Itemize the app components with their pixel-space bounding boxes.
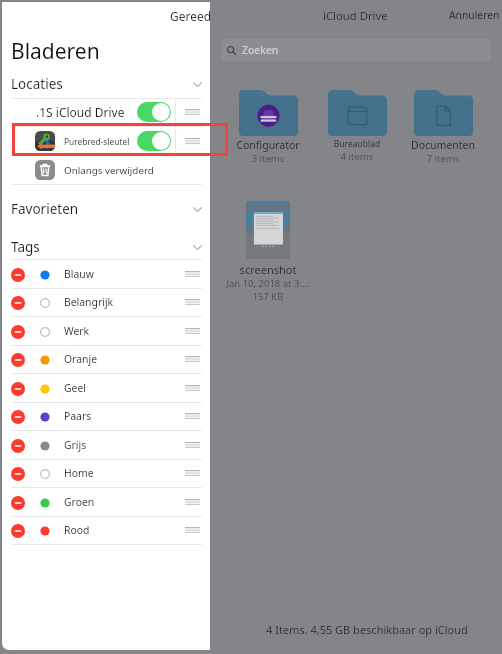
button[interactable]: iCloud Drive bbox=[323, 8, 388, 23]
other: Remove Geel bbox=[11, 382, 25, 396]
button[interactable]: Onlangs verwijderd bbox=[2, 156, 210, 184]
staticText: Tags bbox=[11, 238, 40, 256]
other: Collapse Favorieten bbox=[193, 207, 202, 212]
other: Remove Werk bbox=[11, 325, 25, 339]
staticText: Belangrijk bbox=[64, 295, 114, 309]
other: Reorder bbox=[185, 470, 200, 476]
other: Remove Grijs bbox=[11, 439, 25, 453]
button[interactable]: Locaties bbox=[2, 70, 210, 98]
button[interactable]: Remove Rood bbox=[2, 516, 210, 544]
staticText: Configurator bbox=[224, 138, 312, 152]
staticText: Zoeken bbox=[242, 43, 279, 57]
other: Reorder bbox=[185, 271, 200, 277]
button[interactable]: Remove Groen bbox=[2, 488, 210, 516]
staticText: 157 KB bbox=[224, 290, 312, 303]
other: Reorder bbox=[185, 138, 200, 144]
button[interactable]: Remove Oranje bbox=[2, 345, 210, 373]
button[interactable]: Remove Werk bbox=[2, 317, 210, 345]
button[interactable]: Bureaublad bbox=[313, 90, 401, 163]
button[interactable]: Toggle .1S iCloud Drive bbox=[137, 102, 171, 122]
other: Reorder bbox=[185, 385, 200, 391]
staticText: Rood bbox=[64, 523, 90, 537]
button[interactable]: Tags bbox=[2, 232, 210, 262]
staticText: Onlangs verwijderd bbox=[64, 164, 154, 177]
staticText: Locaties bbox=[11, 75, 63, 93]
other: Remove Belangrijk bbox=[11, 296, 25, 310]
button[interactable]: Remove Paars bbox=[2, 402, 210, 430]
button[interactable]: Remove Home bbox=[2, 459, 210, 487]
staticText: Home bbox=[64, 466, 94, 480]
staticText: Grijs bbox=[64, 438, 87, 452]
other: Collapse Locaties bbox=[193, 82, 202, 87]
staticText: Annuleren bbox=[449, 8, 500, 22]
button[interactable]: Remove Geel bbox=[2, 374, 210, 402]
button[interactable]: Configurator bbox=[224, 90, 312, 165]
staticText: Werk bbox=[64, 324, 90, 338]
other: Remove Oranje bbox=[11, 353, 25, 367]
staticText: Bladeren bbox=[11, 37, 100, 66]
staticText: screenshot bbox=[224, 262, 312, 277]
staticText: 3 items bbox=[224, 152, 312, 165]
other: Reorder bbox=[185, 299, 200, 305]
staticText: Purebred-sleutel bbox=[64, 136, 130, 147]
other: Reorder bbox=[185, 328, 200, 334]
other: Remove Blauw bbox=[11, 268, 25, 282]
other: Remove Rood bbox=[11, 524, 25, 538]
button[interactable]: Toggle Purebred-sleutel bbox=[137, 131, 171, 151]
staticText: Oranje bbox=[64, 352, 97, 366]
staticText: .1S iCloud Drive bbox=[36, 104, 125, 120]
other: Reorder bbox=[185, 109, 200, 115]
button[interactable]: Remove Belangrijk bbox=[2, 288, 210, 316]
staticText: Jan 10, 2018 at 3:... bbox=[224, 277, 312, 290]
staticText: Bureaublad bbox=[313, 138, 401, 150]
button[interactable]: Remove Blauw bbox=[2, 260, 210, 288]
other: Reorder bbox=[185, 356, 200, 362]
button[interactable]: screenshot bbox=[224, 201, 312, 303]
staticText: Blauw bbox=[64, 267, 94, 281]
staticText: iCloud Drive bbox=[323, 8, 388, 23]
other: Remove Paars bbox=[11, 410, 25, 424]
staticText: Groen bbox=[64, 495, 95, 509]
button[interactable]: Zoeken bbox=[221, 39, 491, 61]
other: Remove Home bbox=[11, 467, 25, 481]
staticText: 4 items bbox=[313, 150, 401, 163]
button[interactable]: Remove Grijs bbox=[2, 431, 210, 459]
staticText: Geel bbox=[64, 381, 86, 395]
staticText: Favorieten bbox=[11, 200, 79, 218]
other: Reorder bbox=[185, 527, 200, 533]
button[interactable]: .1S iCloud Drive bbox=[2, 98, 210, 126]
other: Reorder bbox=[185, 413, 200, 419]
other: Reorder bbox=[185, 442, 200, 448]
other: Reorder bbox=[185, 499, 200, 505]
button[interactable]: Gereed bbox=[170, 8, 210, 24]
staticText: Paars bbox=[64, 409, 92, 423]
staticText: 4 Items. 4,55 GB beschikbaar op iCloud bbox=[266, 622, 468, 637]
button[interactable]: Favorieten bbox=[2, 194, 210, 224]
other: Collapse Tags bbox=[193, 245, 202, 250]
staticText: 7 items bbox=[399, 152, 487, 165]
other: Remove Groen bbox=[11, 496, 25, 510]
button[interactable]: Documenten bbox=[399, 90, 487, 165]
button[interactable]: Annuleren bbox=[449, 8, 500, 22]
button[interactable]: Purebred-sleutel bbox=[2, 127, 210, 155]
staticText: Documenten bbox=[399, 138, 487, 152]
